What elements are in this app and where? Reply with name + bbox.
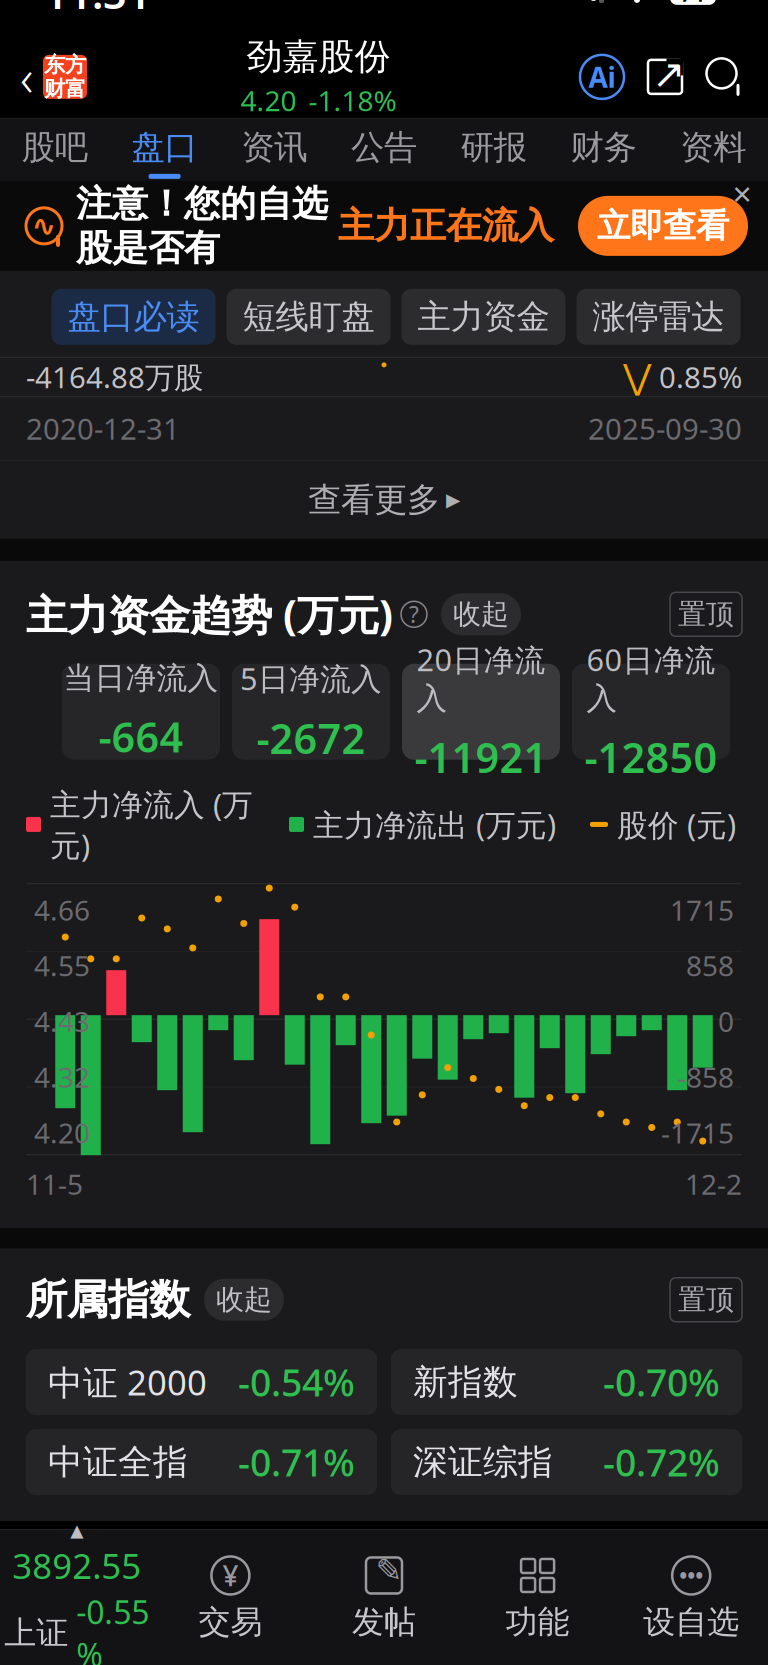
staticText: 5日净流入	[240, 658, 382, 699]
button[interactable]: Search	[704, 56, 746, 98]
staticText: 主力资金	[417, 296, 549, 337]
button[interactable]: 资讯	[219, 119, 329, 181]
staticText: 4.20	[34, 1114, 90, 1151]
button[interactable]: 查看更多	[0, 461, 768, 539]
button[interactable]: 置顶	[670, 1278, 742, 1322]
staticText: -1.18%	[308, 82, 396, 119]
staticText: -4164.88万股	[26, 357, 203, 396]
button[interactable]: 主力资金	[401, 289, 565, 345]
button[interactable]: 收起	[441, 593, 521, 635]
staticText: 2020-12-31	[26, 409, 180, 448]
button[interactable]: Back	[0, 43, 87, 110]
staticText: 所属指数	[26, 1274, 190, 1325]
button[interactable]: 涨停雷达	[576, 289, 740, 345]
staticText: 20日净流入	[416, 639, 545, 717]
staticText: 收起	[453, 597, 509, 631]
staticText: 设自选	[643, 1602, 739, 1642]
staticText: 0.85%	[659, 357, 742, 396]
button[interactable]: 盘口必读	[51, 289, 215, 345]
staticText: 中证全指	[48, 1441, 188, 1483]
staticText: 收起	[216, 1282, 272, 1317]
staticText: ▲	[70, 1521, 83, 1540]
staticText: 60日净流入	[586, 639, 715, 717]
staticText: ‹	[20, 43, 33, 110]
staticText: 4.20	[240, 82, 296, 119]
button[interactable]: 置顶	[670, 592, 742, 636]
staticText: -0.54%	[238, 1357, 355, 1407]
button[interactable]: 中证全指	[26, 1429, 377, 1495]
staticText: 3892.55	[12, 1542, 141, 1588]
button[interactable]: 股吧	[0, 119, 110, 181]
staticText: 财富	[44, 76, 86, 102]
staticText: -1715	[661, 1114, 734, 1151]
staticText: 4.43	[34, 1003, 90, 1040]
button[interactable]: 5日净流入	[232, 664, 390, 760]
button[interactable]: 财务	[549, 119, 658, 181]
staticText: ▶	[446, 489, 460, 510]
button[interactable]: 公告	[329, 119, 439, 181]
button[interactable]: 深证综指	[391, 1429, 742, 1495]
staticText: ↗	[652, 51, 686, 97]
button[interactable]: 立即查看	[578, 196, 748, 256]
button[interactable]: ∿	[0, 182, 554, 270]
staticText: 深证综指	[413, 1441, 553, 1483]
staticText: 主力资金趋势 (万元)	[26, 587, 393, 642]
button[interactable]: 20日净流入	[402, 664, 560, 760]
button[interactable]: Share	[644, 56, 686, 98]
staticText: 股价 (元)	[617, 804, 736, 845]
button[interactable]: 收起	[204, 1279, 284, 1321]
button[interactable]: ▲	[0, 1521, 154, 1665]
button[interactable]: 盘口	[110, 119, 219, 181]
staticText: •••	[679, 1561, 703, 1590]
staticText: 发帖	[352, 1602, 416, 1642]
button[interactable]: 中证 2000	[26, 1349, 377, 1415]
staticText: -858	[677, 1058, 734, 1095]
staticText: -0.72%	[603, 1437, 720, 1487]
staticText: 股吧	[22, 127, 88, 168]
staticText: 功能	[506, 1602, 570, 1642]
button[interactable]: 当日净流入	[62, 664, 220, 760]
staticText: -12850	[584, 729, 717, 784]
button[interactable]: ¥	[154, 1554, 307, 1642]
button[interactable]: 短线盯盘	[226, 289, 390, 345]
staticText: -0.55%	[76, 1590, 149, 1665]
button[interactable]: 60日净流入	[572, 664, 730, 760]
staticText: 2025-09-30	[588, 409, 742, 448]
staticText: 公告	[351, 127, 417, 168]
staticText: 1715	[670, 891, 734, 928]
button[interactable]: 新指数	[391, 1349, 742, 1415]
staticText: 涨停雷达	[592, 296, 724, 337]
button[interactable]: 研报	[439, 119, 549, 181]
staticText: 11:31	[44, 0, 151, 20]
staticText: 11-5	[26, 1165, 83, 1202]
staticText: 资料	[680, 127, 746, 168]
staticText: 立即查看	[597, 205, 729, 246]
staticText: 东方	[44, 52, 86, 78]
staticText: ¥	[222, 1557, 238, 1594]
button[interactable]: 功能	[461, 1554, 614, 1642]
staticText: ✎	[375, 1552, 402, 1589]
staticText: 交易	[198, 1602, 262, 1642]
button[interactable]: AI assistant	[578, 53, 626, 101]
staticText: 主力净流入 (万元)	[50, 784, 253, 865]
staticText: 4.66	[34, 891, 90, 928]
staticText: 12-2	[685, 1165, 742, 1202]
staticText: 新指数	[413, 1361, 518, 1403]
button[interactable]: •••	[614, 1554, 768, 1642]
staticText: 71	[680, 0, 706, 8]
staticText: 主力净流出 (万元)	[313, 804, 556, 845]
button[interactable]: 资料	[658, 119, 768, 181]
staticText: 中证 2000	[48, 1359, 207, 1405]
staticText: 上证	[4, 1613, 68, 1653]
staticText: Ai	[588, 58, 615, 95]
staticText: -664	[98, 709, 183, 764]
staticText: 4.32	[34, 1058, 90, 1095]
staticText: -0.70%	[603, 1357, 720, 1407]
staticText: 注意！您的自选股是否有	[76, 182, 328, 270]
staticText: 研报	[461, 127, 527, 168]
button[interactable]: Close	[725, 178, 759, 212]
staticText: -0.71%	[238, 1437, 355, 1487]
staticText: ∿	[31, 209, 56, 242]
staticText: ✕	[731, 180, 752, 209]
button[interactable]: ✎	[307, 1554, 461, 1642]
